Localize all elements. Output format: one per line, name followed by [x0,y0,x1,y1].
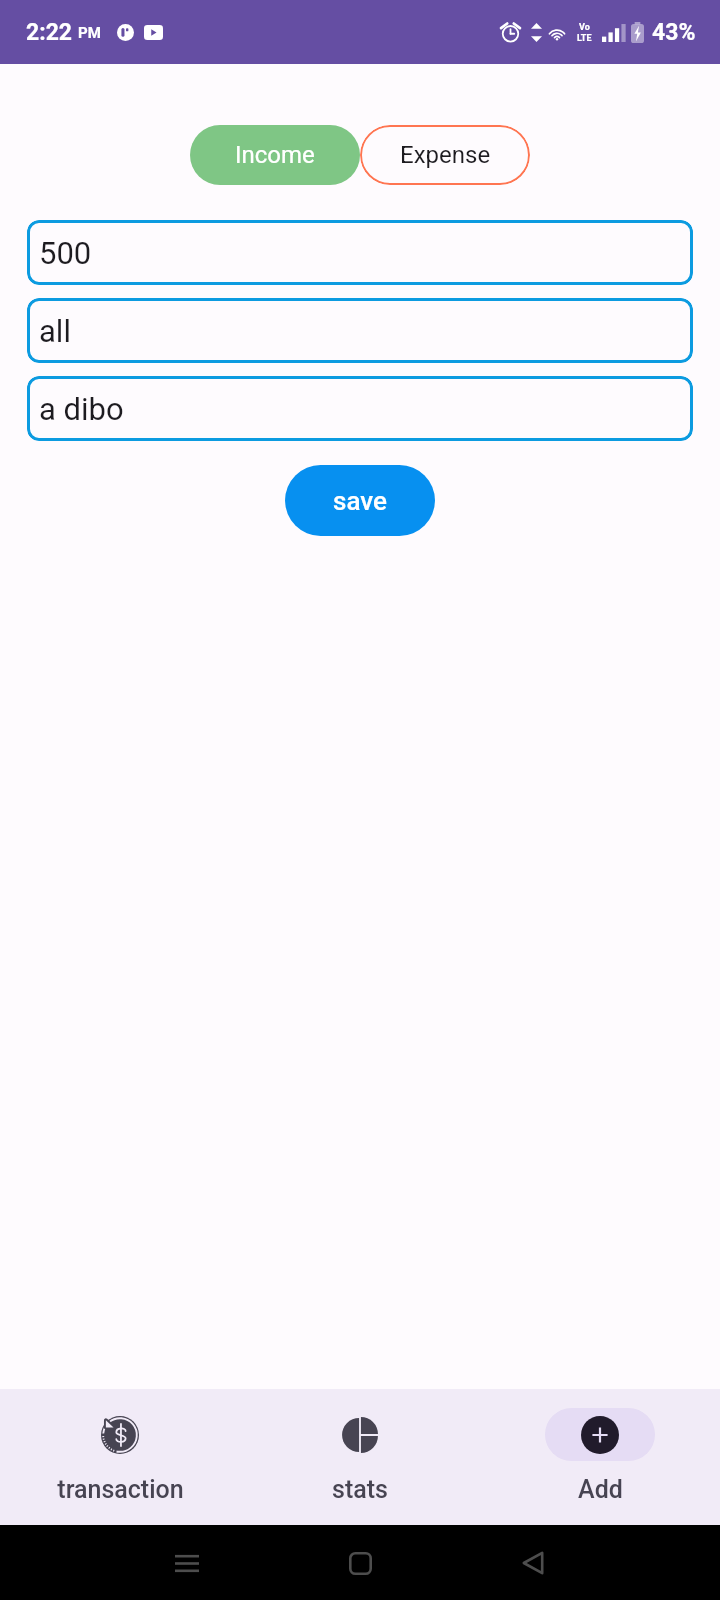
staticText: 2:22 [26,19,73,46]
staticText: transaction [57,1475,184,1504]
button[interactable]: Expense [360,125,530,185]
staticText: 500 [39,235,92,271]
staticText: Expense [400,141,491,169]
button[interactable]: Recent apps [163,1539,211,1587]
button[interactable]: a dibo [27,376,693,441]
button[interactable]: Income [190,125,360,185]
button[interactable]: Add [480,1389,720,1525]
button[interactable]: save [285,465,435,536]
button[interactable]: transaction [0,1389,240,1525]
button[interactable]: Back [509,1539,557,1587]
staticText: PM [78,24,101,42]
staticText: save [333,486,387,516]
staticText: stats [332,1475,388,1504]
staticText: LTE [577,33,592,44]
staticText: Vo [579,22,590,33]
staticText: a dibo [39,391,124,427]
staticText: Add [578,1475,623,1504]
staticText: Income [235,141,315,169]
button[interactable]: all [27,298,693,363]
button[interactable]: Home [336,1539,384,1587]
staticText: 43% [652,19,696,46]
button[interactable]: stats [240,1389,480,1525]
other: Add [581,1416,619,1454]
button[interactable]: 500 [27,220,693,285]
staticText: all [39,313,71,349]
